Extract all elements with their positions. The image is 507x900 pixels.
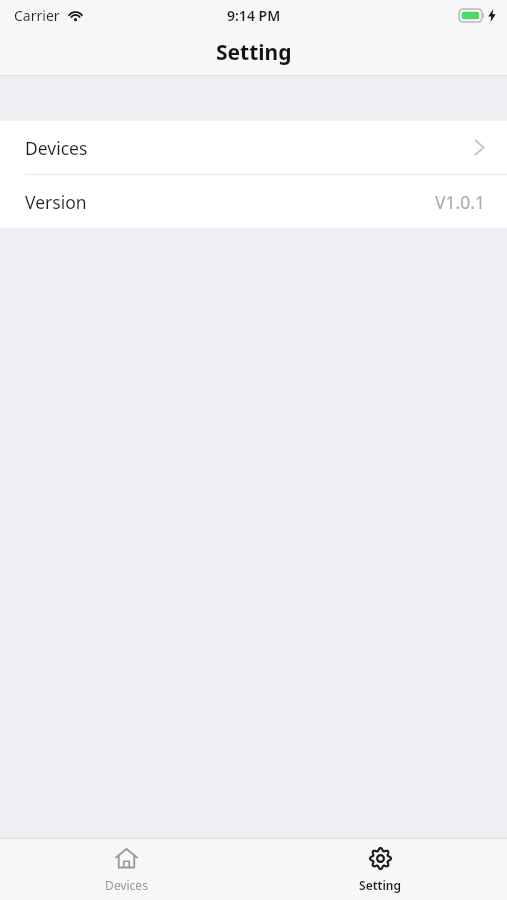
button[interactable]: Devices bbox=[0, 839, 253, 900]
staticText: Version bbox=[25, 190, 87, 214]
staticText: Carrier bbox=[14, 6, 60, 25]
button[interactable]: Devices bbox=[0, 121, 507, 174]
staticText: Devices bbox=[105, 877, 148, 893]
button[interactable]: Version bbox=[0, 175, 507, 228]
staticText: V1.0.1 bbox=[435, 190, 485, 214]
button[interactable]: Setting bbox=[253, 839, 507, 900]
staticText: Devices bbox=[25, 136, 88, 160]
staticText: Setting bbox=[216, 38, 292, 67]
staticText: 9:14 PM bbox=[227, 6, 281, 25]
staticText: Setting bbox=[359, 877, 401, 893]
